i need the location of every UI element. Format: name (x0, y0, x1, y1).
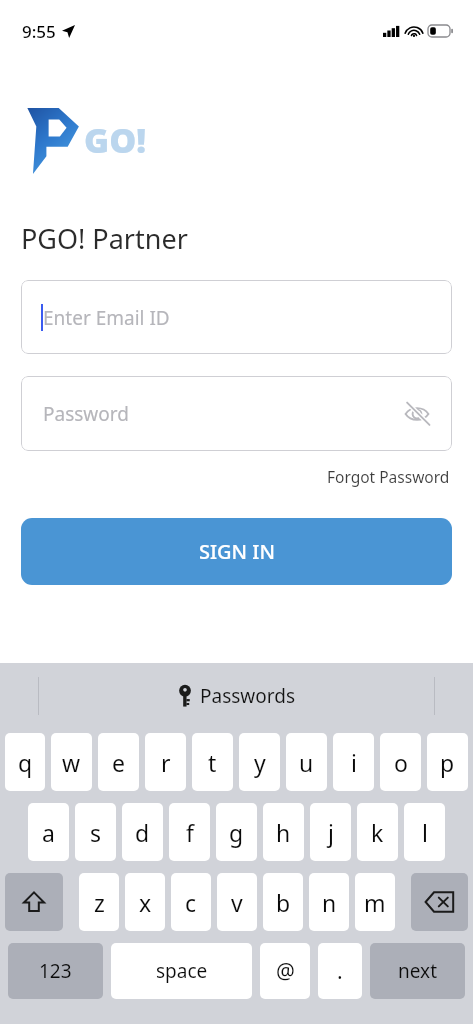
button[interactable]: w (51, 733, 92, 791)
button[interactable]: 123 (8, 943, 103, 999)
staticText: Passwords (200, 683, 296, 709)
button[interactable]: c (171, 873, 211, 931)
button[interactable]: next (370, 943, 465, 999)
button[interactable]: b (263, 873, 303, 931)
staticText: r (161, 747, 171, 778)
staticText: @ (276, 957, 295, 986)
button[interactable]: v (217, 873, 257, 931)
staticText: i (351, 747, 357, 778)
button[interactable]: Forgot Password (325, 464, 452, 489)
staticText: t (208, 747, 217, 778)
button[interactable]: m (355, 873, 395, 931)
staticText: d (135, 817, 150, 848)
staticText: Enter Email ID (43, 305, 170, 331)
button[interactable]: u (286, 733, 327, 791)
staticText: h (276, 817, 291, 848)
staticText: p (440, 747, 455, 778)
staticText: e (112, 747, 125, 778)
button[interactable]: . (318, 943, 362, 999)
staticText: y (254, 747, 266, 778)
staticText: next (398, 958, 437, 984)
button[interactable]: Show password (400, 397, 434, 431)
button[interactable]: g (216, 803, 257, 861)
button[interactable]: Backspace (411, 873, 468, 931)
staticText: z (94, 887, 105, 918)
staticText: v (231, 887, 243, 918)
button[interactable]: SIGN IN (21, 518, 452, 585)
button[interactable]: l (404, 803, 445, 861)
staticText: f (186, 817, 194, 848)
button[interactable]: d (122, 803, 163, 861)
button[interactable]: o (380, 733, 421, 791)
staticText: s (90, 817, 102, 848)
staticText: o (394, 747, 408, 778)
staticText: x (139, 887, 152, 918)
staticText: 9:55 (22, 20, 56, 43)
staticText: SIGN IN (199, 538, 275, 565)
button[interactable]: e (98, 733, 139, 791)
staticText: l (422, 817, 428, 848)
button[interactable]: s (75, 803, 116, 861)
button[interactable]: @ (260, 943, 310, 999)
button[interactable]: p (427, 733, 468, 791)
staticText: k (371, 817, 384, 848)
staticText: space (156, 958, 208, 984)
button[interactable]: t (192, 733, 233, 791)
staticText: PGO! Partner (21, 220, 188, 257)
button[interactable]: Enter Email ID (21, 280, 452, 354)
staticText: u (299, 747, 314, 778)
button[interactable]: Passwords (178, 683, 296, 709)
staticText: j (328, 817, 334, 848)
button[interactable]: r (145, 733, 186, 791)
staticText: 123 (39, 958, 72, 984)
button[interactable]: space (111, 943, 252, 999)
button[interactable]: Password (21, 376, 452, 451)
staticText: a (42, 817, 55, 848)
button[interactable]: i (333, 733, 374, 791)
button[interactable]: x (125, 873, 165, 931)
button[interactable]: a (28, 803, 69, 861)
button[interactable]: n (309, 873, 349, 931)
staticText: Password (43, 401, 129, 427)
staticText: Forgot Password (327, 466, 450, 487)
staticText: q (18, 747, 33, 778)
button[interactable]: y (239, 733, 280, 791)
button[interactable]: z (79, 873, 119, 931)
staticText: m (364, 887, 386, 918)
staticText: w (62, 747, 81, 778)
staticText: g (229, 817, 244, 848)
staticText: . (337, 957, 343, 986)
button[interactable]: k (357, 803, 398, 861)
button[interactable]: Shift (5, 873, 63, 931)
staticText: b (276, 887, 291, 918)
button[interactable]: f (169, 803, 210, 861)
button[interactable]: h (263, 803, 304, 861)
staticText: GO! (84, 117, 147, 163)
staticText: n (322, 887, 337, 918)
button[interactable]: j (310, 803, 351, 861)
button[interactable]: q (5, 733, 45, 791)
staticText: c (185, 887, 197, 918)
